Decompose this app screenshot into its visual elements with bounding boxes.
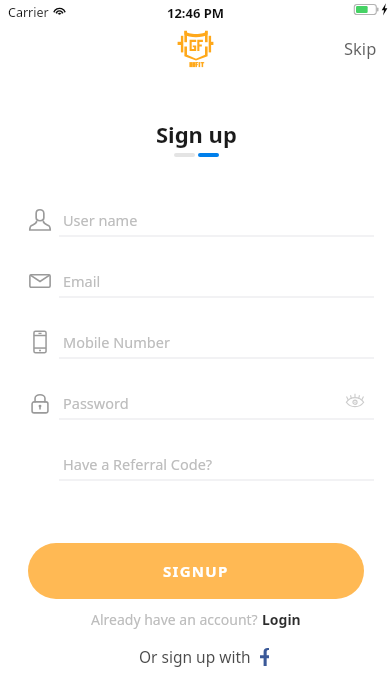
button[interactable]: Show password bbox=[340, 393, 370, 413]
staticText: Skip bbox=[344, 37, 377, 59]
staticText: Have a Referral Code? bbox=[63, 454, 213, 474]
button[interactable]: SIGNUP bbox=[28, 543, 364, 599]
staticText: Already have an account? bbox=[91, 610, 262, 629]
staticText: Mobile Number bbox=[63, 332, 170, 352]
button[interactable]: Already have an account? bbox=[91, 610, 301, 629]
staticText: SIGNUP bbox=[163, 561, 229, 581]
staticText: Carrier bbox=[8, 4, 49, 21]
staticText: 12:46 PM bbox=[167, 4, 225, 22]
button[interactable]: Sign up with Facebook bbox=[259, 648, 270, 666]
staticText: Password bbox=[63, 393, 129, 413]
button[interactable]: Email bbox=[0, 266, 392, 327]
button[interactable]: Mobile Number bbox=[0, 327, 392, 388]
staticText: Or sign up with bbox=[139, 646, 251, 667]
staticText: User name bbox=[63, 210, 138, 230]
staticText: Login bbox=[262, 610, 301, 629]
staticText: Email bbox=[63, 271, 101, 291]
button[interactable]: Have a Referral Code? bbox=[0, 449, 392, 510]
button[interactable]: Password bbox=[0, 388, 392, 449]
button[interactable]: User name bbox=[0, 205, 392, 266]
staticText: Sign up bbox=[156, 119, 237, 149]
button[interactable]: Skip bbox=[336, 33, 385, 63]
